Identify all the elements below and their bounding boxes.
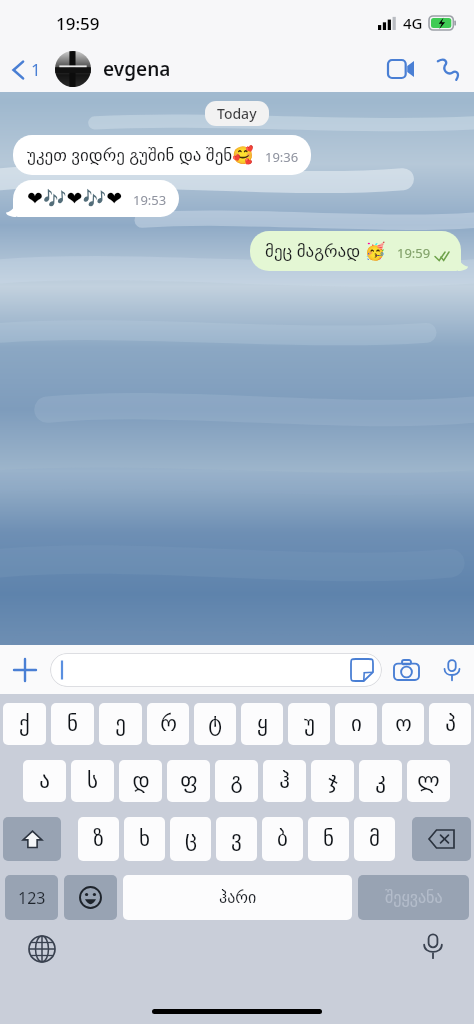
staticText: ს — [87, 769, 98, 793]
button[interactable]: ნ — [308, 817, 349, 861]
staticText: 123 — [18, 887, 46, 909]
staticText: ე — [115, 712, 126, 736]
button[interactable]: ჯ — [311, 760, 354, 802]
staticText: 1 — [31, 58, 41, 81]
staticText: პ — [445, 712, 456, 736]
button[interactable]: დ — [119, 760, 162, 802]
staticText: ხ — [139, 827, 150, 851]
button[interactable]: უკეთ ვიდრე გუშინ და შენ🥰 — [13, 135, 311, 175]
button[interactable]: ს — [71, 760, 114, 802]
button[interactable]: Video call — [378, 46, 424, 92]
button[interactable]: Change keyboard — [28, 935, 56, 963]
staticText: ნ — [67, 712, 78, 736]
button[interactable]: Attach — [0, 645, 50, 694]
staticText: ბ — [277, 827, 288, 851]
button[interactable]: 123 — [5, 875, 58, 920]
staticText: გ — [230, 769, 243, 793]
staticText: კ — [375, 769, 386, 793]
staticText: რ — [160, 712, 177, 736]
button[interactable]: ნ — [51, 703, 94, 745]
button[interactable]: Stickers — [50, 653, 382, 687]
staticText: 19:36 — [265, 148, 299, 166]
staticText: 19:59 — [397, 244, 431, 262]
button[interactable]: ა — [23, 760, 66, 802]
staticText: ქ — [19, 712, 30, 736]
button[interactable]: ც — [170, 817, 211, 861]
staticText: ნ — [323, 827, 334, 851]
button[interactable]: Voice message — [430, 648, 474, 692]
button[interactable]: Camera — [382, 646, 430, 694]
button[interactable]: პ — [429, 703, 471, 745]
button[interactable]: ლ — [407, 760, 450, 802]
staticText: ვ — [231, 827, 242, 851]
staticText: ❤️🎶❤️🎶❤️ — [27, 187, 123, 209]
button[interactable]: გ — [215, 760, 258, 802]
staticText: შეყვანა — [385, 888, 443, 907]
button[interactable]: ფ — [167, 760, 210, 802]
button[interactable]: მ — [354, 817, 395, 861]
staticText: ი — [351, 712, 362, 736]
button[interactable]: ხ — [124, 817, 165, 861]
button[interactable]: ყ — [241, 703, 283, 745]
staticText: ფ — [180, 769, 198, 793]
button[interactable]: ❤️🎶❤️🎶❤️ — [13, 180, 179, 217]
button[interactable]: ჰ — [263, 760, 306, 802]
staticText: მეც მაგრად 🥳 — [265, 239, 386, 262]
button[interactable]: Dictation — [420, 933, 446, 959]
staticText: ჰ — [279, 769, 290, 793]
button[interactable]: Backspace — [412, 817, 471, 861]
button[interactable]: ჰარი — [123, 875, 352, 920]
button[interactable]: Back — [0, 52, 47, 87]
button[interactable]: ტ — [194, 703, 236, 745]
staticText: ც — [185, 827, 197, 851]
button[interactable]: Today — [217, 104, 257, 123]
staticText: უკეთ ვიდრე გუშინ და შენ🥰 — [27, 143, 254, 166]
button[interactable]: Shift — [3, 817, 61, 861]
button[interactable]: მეც მაგრად 🥳 — [250, 231, 461, 271]
button[interactable]: ქ — [3, 703, 46, 745]
staticText: 4G — [403, 13, 423, 33]
button[interactable]: ი — [335, 703, 377, 745]
button[interactable] — [55, 51, 91, 87]
staticText: 19:53 — [133, 191, 167, 209]
staticText: ტ — [208, 712, 222, 736]
staticText: 19:59 — [56, 12, 100, 35]
button[interactable]: უ — [288, 703, 330, 745]
staticText: ო — [395, 712, 412, 736]
button[interactable]: ბ — [262, 817, 303, 861]
button[interactable]: Stickers — [351, 659, 373, 681]
staticText: ჯ — [328, 769, 338, 793]
staticText: ა — [39, 769, 50, 793]
staticText: დ — [132, 769, 150, 793]
staticText: ლ — [417, 769, 440, 793]
button[interactable]: evgena — [103, 56, 378, 82]
staticText: Today — [217, 104, 257, 123]
staticText: უ — [304, 712, 315, 736]
button[interactable]: ვ — [216, 817, 257, 861]
button[interactable]: Emoji — [64, 875, 117, 920]
button[interactable]: შეყვანა — [358, 875, 469, 920]
button[interactable]: ე — [99, 703, 142, 745]
button[interactable]: ო — [382, 703, 424, 745]
button[interactable]: ზ — [78, 817, 119, 861]
staticText: ზ — [93, 827, 104, 851]
staticText: ყ — [257, 712, 268, 736]
button[interactable]: Call — [424, 46, 470, 92]
button[interactable]: კ — [359, 760, 402, 802]
staticText: მ — [369, 827, 380, 851]
staticText: ჰარი — [219, 888, 257, 907]
button[interactable]: რ — [147, 703, 189, 745]
